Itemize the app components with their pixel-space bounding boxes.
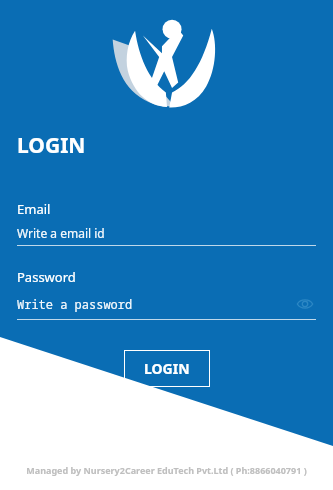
staticText: LOGIN xyxy=(144,359,190,378)
button[interactable]: LOGIN xyxy=(124,350,210,387)
staticText: LOGIN xyxy=(17,131,86,160)
button[interactable]: Show password xyxy=(294,293,316,315)
staticText: Email xyxy=(17,200,51,218)
staticText: Password xyxy=(17,268,76,286)
staticText: Managed by Nursery2Career EduTech Pvt.Lt… xyxy=(0,464,333,476)
staticText: Write a password xyxy=(17,296,133,312)
staticText: Write a email id xyxy=(17,225,105,241)
